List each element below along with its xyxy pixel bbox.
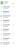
button[interactable]	[0, 18, 16, 23]
button[interactable]	[0, 36, 16, 41]
button[interactable]	[0, 41, 16, 45]
button[interactable]	[0, 32, 16, 36]
button[interactable]	[0, 14, 16, 18]
button[interactable]	[0, 9, 16, 14]
button[interactable]	[0, 27, 16, 32]
button[interactable]	[0, 23, 16, 27]
button[interactable]	[0, 5, 16, 9]
